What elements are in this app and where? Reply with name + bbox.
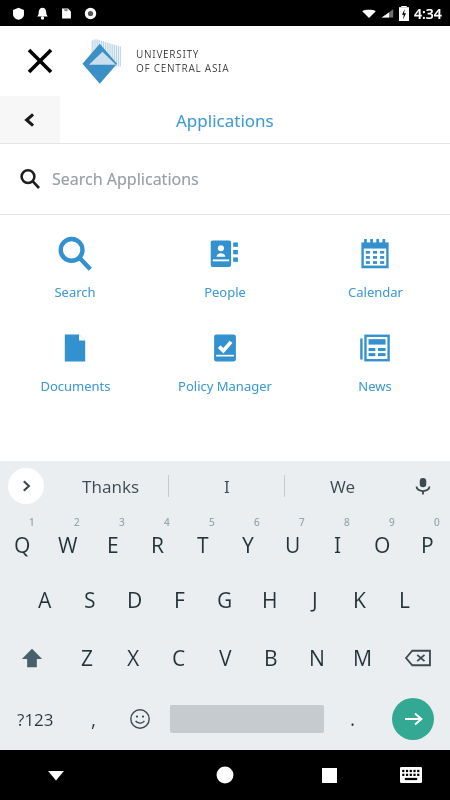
- staticText: C: [172, 644, 186, 673]
- button[interactable]: Switch keyboard: [386, 750, 436, 800]
- staticText: L: [399, 586, 411, 615]
- button[interactable]: Close: [20, 41, 60, 81]
- staticText: B: [264, 644, 278, 673]
- staticText: ?123: [17, 708, 54, 731]
- button[interactable]: L: [382, 573, 427, 628]
- button[interactable]: V: [202, 628, 248, 688]
- staticText: UNIVERSITY: [136, 47, 200, 61]
- staticText: 9: [389, 515, 395, 529]
- button[interactable]: .: [330, 688, 376, 750]
- staticText: T: [197, 531, 209, 560]
- staticText: 7: [299, 515, 305, 529]
- button[interactable]: M: [340, 628, 386, 688]
- button[interactable]: Voice input: [406, 469, 440, 503]
- button[interactable]: 1: [0, 511, 45, 573]
- button[interactable]: ,: [71, 688, 117, 750]
- button[interactable]: J: [292, 573, 337, 628]
- button[interactable]: N: [294, 628, 340, 688]
- staticText: M: [353, 644, 373, 673]
- staticText: A: [38, 586, 52, 615]
- staticText: I: [224, 475, 230, 498]
- staticText: U: [285, 531, 301, 560]
- staticText: I: [334, 531, 342, 560]
- button[interactable]: We: [285, 461, 400, 511]
- staticText: Search: [54, 283, 96, 301]
- staticText: 6: [254, 515, 260, 529]
- staticText: .: [350, 706, 356, 732]
- staticText: Thanks: [82, 475, 140, 498]
- button[interactable]: People: [150, 233, 300, 305]
- staticText: W: [58, 531, 78, 560]
- button[interactable]: 5: [180, 511, 225, 573]
- button[interactable]: G: [202, 573, 247, 628]
- staticText: 4: [164, 515, 170, 529]
- staticText: People: [204, 283, 246, 301]
- staticText: 2: [74, 515, 80, 529]
- staticText: N: [309, 644, 325, 673]
- button[interactable]: 7: [270, 511, 315, 573]
- staticText: 8: [344, 515, 350, 529]
- button[interactable]: 8: [315, 511, 360, 573]
- button[interactable]: C: [156, 628, 202, 688]
- staticText: S: [84, 586, 96, 615]
- staticText: 0: [434, 515, 440, 529]
- button[interactable]: Home: [180, 750, 270, 800]
- button[interactable]: S: [67, 573, 112, 628]
- button[interactable]: Emoji: [117, 688, 163, 750]
- staticText: Y: [242, 531, 254, 560]
- button[interactable]: Backspace: [386, 628, 450, 688]
- button[interactable]: Shift: [0, 628, 64, 688]
- button[interactable]: Documents: [0, 327, 150, 399]
- staticText: News: [358, 377, 392, 395]
- button[interactable]: D: [112, 573, 157, 628]
- staticText: We: [330, 475, 356, 498]
- button[interactable]: Search: [0, 233, 150, 305]
- button[interactable]: 4: [135, 511, 180, 573]
- button[interactable]: F: [157, 573, 202, 628]
- button[interactable]: 9: [360, 511, 405, 573]
- button[interactable]: 0: [405, 511, 450, 573]
- button[interactable]: Enter: [392, 698, 434, 740]
- staticText: J: [312, 586, 318, 615]
- button[interactable]: More suggestions: [8, 468, 44, 504]
- button[interactable]: ?123: [0, 688, 71, 750]
- staticText: Search Applications: [52, 168, 199, 190]
- button[interactable]: Space: [163, 688, 330, 750]
- button[interactable]: Calendar: [300, 233, 450, 305]
- button[interactable]: K: [337, 573, 382, 628]
- button[interactable]: News: [300, 327, 450, 399]
- staticText: OF CENTRAL ASIA: [136, 61, 230, 75]
- staticText: Z: [81, 644, 94, 673]
- button[interactable]: Z: [64, 628, 110, 688]
- staticText: 4:34: [414, 4, 442, 23]
- staticText: V: [219, 644, 232, 673]
- button[interactable]: A: [22, 573, 67, 628]
- button[interactable]: I: [169, 461, 284, 511]
- button[interactable]: 6: [225, 511, 270, 573]
- staticText: 5: [209, 515, 215, 529]
- staticText: Calendar: [348, 283, 403, 301]
- button[interactable]: 3: [90, 511, 135, 573]
- staticText: Applications: [176, 109, 274, 132]
- button[interactable]: Back: [0, 750, 112, 800]
- staticText: G: [217, 586, 233, 615]
- button[interactable]: B: [248, 628, 294, 688]
- staticText: X: [127, 644, 140, 673]
- button[interactable]: 2: [45, 511, 90, 573]
- button[interactable]: Policy Manager: [150, 327, 300, 399]
- button[interactable]: Search Applications: [0, 144, 450, 214]
- button[interactable]: Back: [0, 96, 60, 144]
- staticText: Documents: [40, 377, 111, 395]
- staticText: E: [107, 531, 119, 560]
- button[interactable]: Thanks: [54, 461, 168, 511]
- staticText: R: [151, 531, 165, 560]
- button[interactable]: X: [110, 628, 156, 688]
- staticText: H: [262, 586, 278, 615]
- staticText: F: [174, 586, 185, 615]
- staticText: ,: [91, 706, 97, 732]
- button[interactable]: H: [247, 573, 292, 628]
- button[interactable]: Recents: [294, 750, 364, 800]
- staticText: K: [353, 586, 366, 615]
- staticText: O: [374, 531, 391, 560]
- staticText: Q: [14, 531, 31, 560]
